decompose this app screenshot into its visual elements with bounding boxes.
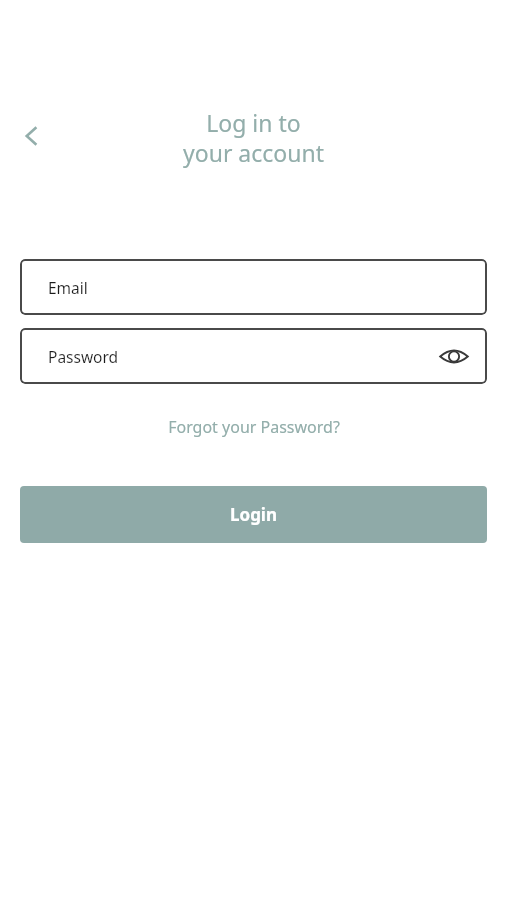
button[interactable]: Email (20, 259, 487, 315)
staticText: Email (48, 277, 88, 298)
button[interactable]: Back (8, 112, 56, 160)
button[interactable]: Forgot your Password? (156, 412, 352, 442)
button[interactable]: Password (20, 328, 487, 384)
staticText: Login (230, 503, 278, 526)
button[interactable]: Login (20, 486, 487, 543)
staticText: Password (48, 346, 119, 367)
button[interactable]: Show password (434, 336, 474, 376)
staticText: Log in to your account (183, 107, 324, 168)
staticText: Forgot your Password? (168, 416, 340, 438)
